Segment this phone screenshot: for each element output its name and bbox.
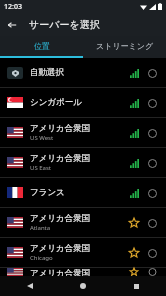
staticText: US West <box>30 134 54 142</box>
staticText: Atlanta <box>30 224 51 232</box>
staticText: 位置 <box>34 41 50 51</box>
button[interactable]: Recents <box>128 278 144 294</box>
button[interactable]: アメリカ合衆国 <box>0 148 166 177</box>
button[interactable]: アメリカ合衆国 <box>0 118 166 147</box>
staticText: アメリカ合衆国 <box>30 268 91 276</box>
staticText: 自動選択 <box>30 67 64 78</box>
button[interactable]: Favorite <box>127 216 141 230</box>
button[interactable]: 自動選択 <box>0 58 166 87</box>
button[interactable]: Favorite <box>127 246 141 260</box>
button[interactable]: Favorite <box>127 268 141 276</box>
staticText: ストリーミング <box>96 41 154 51</box>
button[interactable]: Select server <box>145 216 159 230</box>
staticText: アメリカ合衆国 <box>30 153 91 164</box>
staticText: US East <box>30 164 51 172</box>
staticText: アメリカ合衆国 <box>30 213 91 224</box>
button[interactable]: アメリカ合衆国 <box>0 238 166 267</box>
button[interactable]: アメリカ合衆国 <box>0 208 166 237</box>
button[interactable]: Home <box>75 278 91 294</box>
button[interactable]: Select server <box>145 126 159 140</box>
button[interactable]: Back <box>0 13 23 36</box>
button[interactable]: シンガポール <box>0 88 166 117</box>
staticText: アメリカ合衆国 <box>30 243 91 254</box>
button[interactable]: フランス <box>0 178 166 207</box>
button[interactable]: Select server <box>145 96 159 110</box>
button[interactable]: Select server <box>145 246 159 260</box>
button[interactable]: 位置 <box>0 36 83 56</box>
staticText: 12:03 <box>4 2 22 12</box>
staticText: Chicago <box>30 254 53 262</box>
staticText: アメリカ合衆国 <box>30 123 91 134</box>
button[interactable]: Select server <box>145 66 159 80</box>
button[interactable]: Select server <box>145 186 159 200</box>
button[interactable]: Select server <box>145 268 159 276</box>
button[interactable]: ストリーミング <box>83 36 166 56</box>
button[interactable]: アメリカ合衆国 <box>0 268 166 276</box>
staticText: シンガポール <box>30 97 82 108</box>
staticText: サーバーを選択 <box>29 18 100 31</box>
button[interactable]: Back <box>22 278 38 294</box>
staticText: フランス <box>30 187 65 198</box>
button[interactable]: Select server <box>145 156 159 170</box>
